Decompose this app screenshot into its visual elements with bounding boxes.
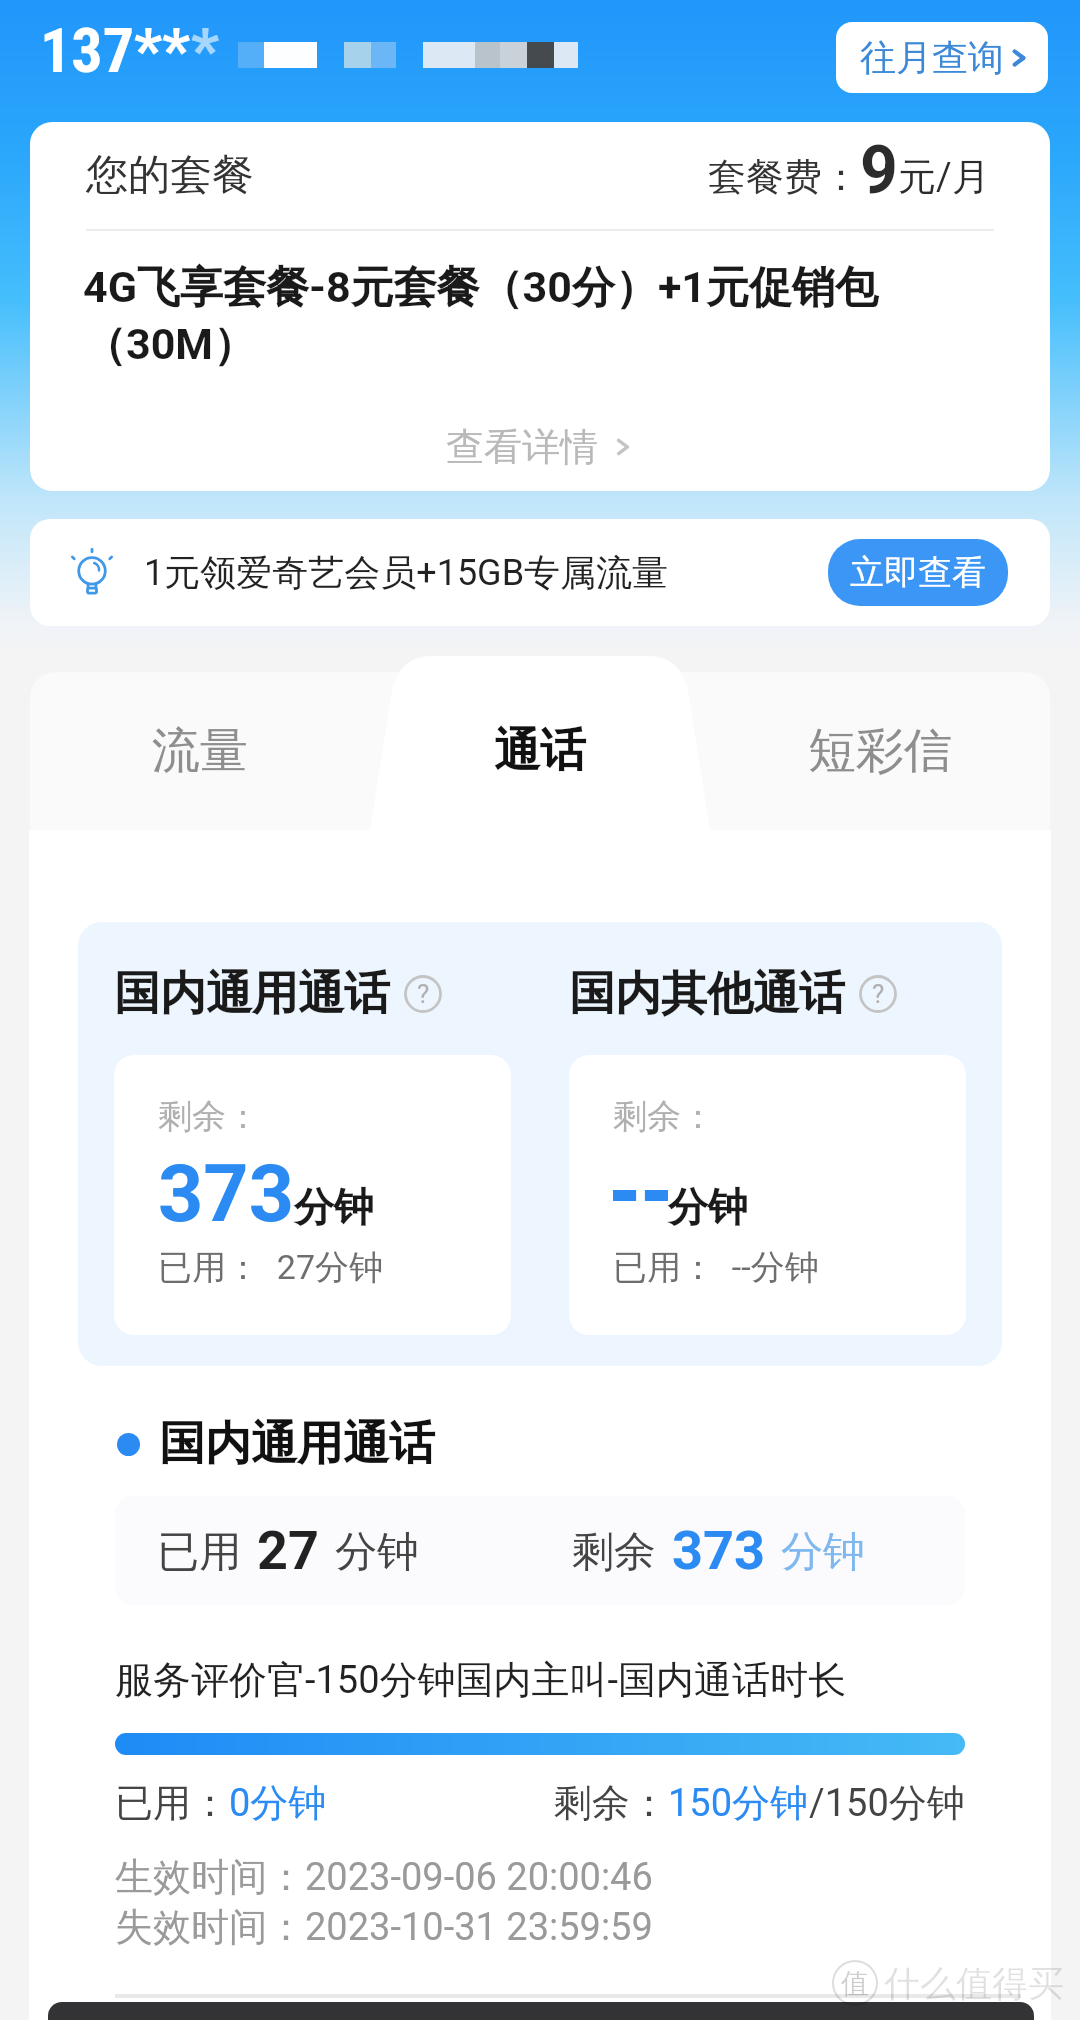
button[interactable]: 流量: [30, 656, 370, 830]
staticText: 已用： --分钟: [613, 1246, 819, 1289]
staticText: 您的套餐: [86, 149, 254, 202]
staticText: 分钟: [294, 1182, 374, 1232]
staticText: 已用：: [115, 1779, 229, 1827]
staticText: 值: [841, 1966, 869, 2001]
button[interactable]: 查看详情: [438, 419, 642, 475]
button[interactable]: 短彩信: [710, 656, 1050, 830]
staticText: 失效时间：2023-10-31 23:59:59: [115, 1903, 653, 1951]
staticText: 9: [860, 132, 898, 209]
staticText: 套餐费：: [708, 153, 860, 201]
staticText: 373: [672, 1519, 765, 1582]
staticText: 什么值得买: [884, 1961, 1064, 2006]
staticText: 150分钟: [668, 1779, 809, 1827]
staticText: 国内其他通话: [569, 965, 845, 1023]
staticText: 1元领爱奇艺会员+15GB专属流量: [144, 550, 669, 595]
staticText: ?: [417, 979, 430, 1009]
staticText: 剩余：: [554, 1779, 668, 1827]
staticText: 已用: [157, 1526, 241, 1579]
staticText: 元/月: [898, 153, 990, 201]
staticText: 剩余: [572, 1526, 656, 1579]
button[interactable]: Tip: [30, 519, 1050, 626]
staticText: 查看详情: [446, 423, 598, 471]
staticText: **: [134, 14, 191, 87]
staticText: 已用： 27分钟: [158, 1246, 384, 1289]
staticText: 立即查看: [850, 551, 986, 594]
staticText: *: [191, 14, 220, 87]
staticText: 服务评价官-150分钟国内主叫-国内通话时长: [115, 1656, 847, 1704]
staticText: 27: [257, 1519, 319, 1582]
staticText: 剩余：: [613, 1095, 715, 1138]
staticText: 0分钟: [229, 1779, 327, 1827]
staticText: 137: [40, 14, 134, 87]
staticText: /150分钟: [809, 1779, 965, 1827]
staticText: ?: [872, 979, 885, 1009]
button[interactable]: 立即查看: [828, 539, 1008, 606]
staticText: 国内通用通话: [159, 1415, 435, 1473]
other: Tip: [66, 547, 118, 599]
staticText: 分钟: [781, 1526, 865, 1579]
staticText: 国内通用通话: [114, 965, 390, 1023]
staticText: 短彩信: [808, 721, 952, 781]
staticText: 分钟: [335, 1526, 419, 1579]
staticText: 4G飞享套餐-8元套餐（30分）+1元促销包（30M）: [83, 261, 1010, 372]
staticText: 流量: [152, 721, 248, 781]
button[interactable]: 往月查询: [836, 22, 1048, 93]
staticText: 剩余：: [158, 1095, 260, 1138]
staticText: 往月查询: [860, 35, 1004, 80]
staticText: 生效时间：2023-09-06 20:00:46: [115, 1853, 653, 1901]
button[interactable]: 通话: [370, 656, 710, 830]
staticText: 通话: [494, 722, 586, 780]
staticText: 分钟: [668, 1182, 748, 1232]
staticText: 373: [158, 1148, 294, 1238]
